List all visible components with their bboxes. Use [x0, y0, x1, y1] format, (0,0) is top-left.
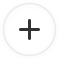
- button[interactable]: Add: [3, 3, 55, 55]
